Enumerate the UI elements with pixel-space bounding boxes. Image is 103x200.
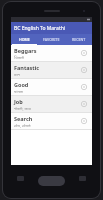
button[interactable]: Beggars (11, 45, 92, 61)
button[interactable]: Fantastic (11, 62, 92, 78)
staticText: चांगला (14, 89, 24, 94)
staticText: छान (14, 72, 20, 77)
staticText: HOME (19, 37, 30, 42)
staticText: Fantastic (14, 64, 40, 71)
button[interactable]: Add to favourites (79, 65, 89, 75)
staticText: FAVORITE (43, 37, 60, 42)
button[interactable]: Job (11, 96, 92, 112)
staticText: Job (14, 98, 23, 105)
staticText: भिकारी (14, 55, 25, 60)
staticText: नोकरी, काम (14, 106, 31, 111)
button[interactable]: Add to favourites (79, 82, 89, 92)
button[interactable]: BC English To Marathi Dictionary (11, 22, 92, 34)
staticText: RECENT (72, 37, 86, 42)
staticText: BC English To Marathi Dictionary (14, 25, 89, 32)
staticText: Search (14, 115, 33, 122)
button[interactable]: FAVORITE (38, 34, 65, 45)
button[interactable]: Add to favourites (79, 116, 89, 126)
button[interactable]: HOME (11, 34, 38, 45)
button[interactable]: Good (11, 79, 92, 95)
button[interactable]: Search (11, 113, 92, 129)
staticText: Good (14, 81, 29, 88)
staticText: शोध, शोधणे (14, 123, 31, 128)
other: Home (38, 176, 65, 186)
staticText: Beggars (14, 47, 37, 54)
button[interactable]: Add to favourites (79, 48, 89, 58)
button[interactable]: RECENT (65, 34, 92, 45)
button[interactable]: Add to favourites (79, 99, 89, 109)
